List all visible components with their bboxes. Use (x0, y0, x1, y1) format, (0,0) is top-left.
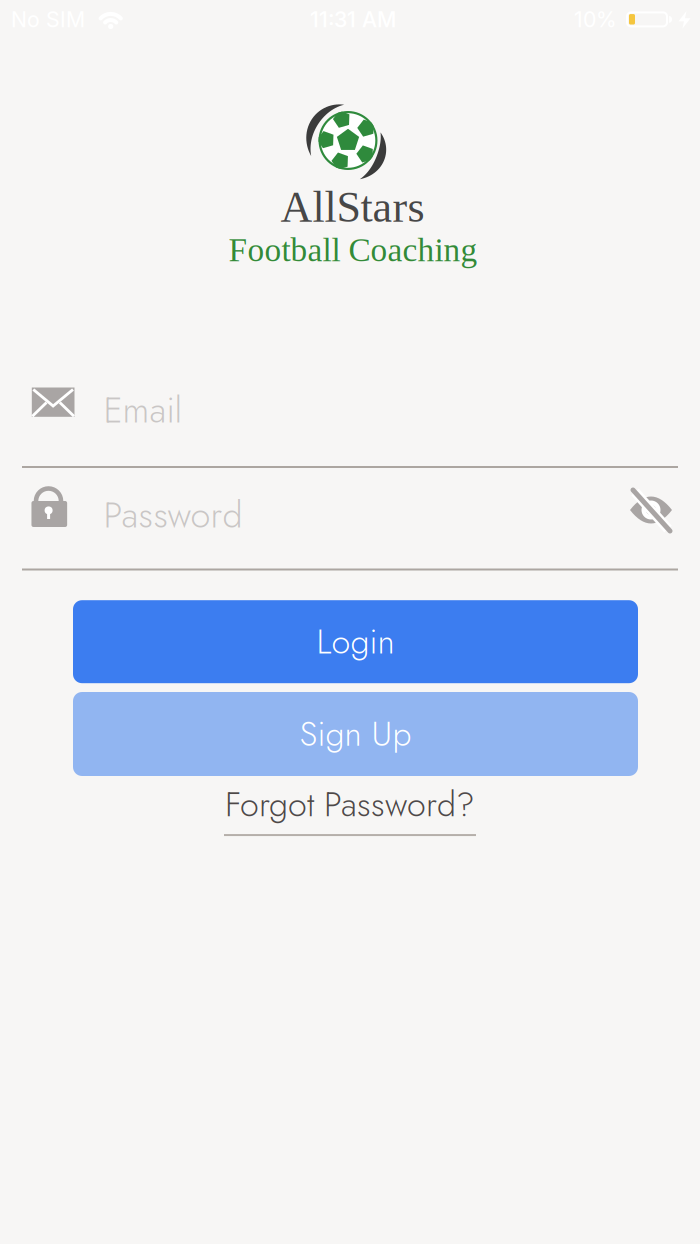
button[interactable]: Show password (623, 482, 679, 538)
staticText: Football Coaching (228, 231, 477, 268)
staticText: Password (103, 489, 242, 541)
staticText: Email (103, 384, 182, 436)
staticText: Login (316, 617, 394, 666)
staticText: 11:31 AM (310, 7, 396, 32)
staticText: 10% (574, 7, 617, 32)
staticText: AllStars (280, 183, 424, 231)
staticText: No SIM (11, 7, 85, 32)
button[interactable]: Email (22, 375, 678, 467)
button[interactable]: Sign Up (73, 692, 638, 776)
button[interactable]: Password (22, 477, 582, 569)
button[interactable]: Forgot Password? (224, 780, 476, 836)
staticText: Sign Up (299, 709, 411, 758)
staticText: Forgot Password? (225, 780, 475, 829)
button[interactable]: Login (73, 600, 638, 683)
